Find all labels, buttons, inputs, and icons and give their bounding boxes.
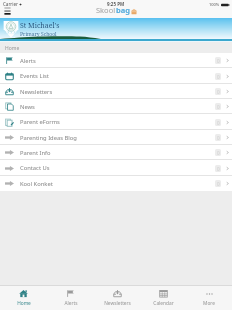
staticText: Events List [20, 72, 49, 80]
button[interactable]: Home [0, 286, 47, 310]
button[interactable]: Alerts [47, 286, 94, 310]
staticText: Contact Us [20, 164, 50, 172]
staticText: Newsletters [20, 88, 53, 96]
staticText: Primary School [20, 31, 57, 38]
staticText: 0 [217, 135, 220, 141]
staticText: Alerts [20, 57, 36, 65]
staticText: 9:25 PM [107, 1, 125, 7]
staticText: News [20, 103, 35, 111]
button[interactable]: News [0, 99, 232, 114]
staticText: Calendar [153, 300, 174, 307]
staticText: 0 [217, 150, 220, 156]
staticText: Home [17, 300, 31, 307]
staticText: Parent Info [20, 149, 51, 157]
staticText: Skool [96, 5, 116, 15]
staticText: 0 [217, 74, 220, 80]
button[interactable]: Newsletters [94, 286, 140, 310]
staticText: 0 [217, 104, 220, 110]
staticText: 0 [217, 166, 220, 172]
staticText: 0 [217, 181, 220, 187]
button[interactable]: Parenting Ideas Blog [0, 130, 232, 145]
staticText: Newsletters [104, 300, 131, 307]
staticText: Kool Konket [20, 180, 53, 188]
staticText: More [203, 300, 215, 307]
staticText: Home [5, 45, 20, 52]
staticText: 0 [217, 120, 220, 126]
button[interactable]: Events List [0, 68, 232, 84]
button[interactable]: Alerts [0, 53, 232, 68]
button[interactable]: Calendar [140, 286, 186, 310]
button[interactable]: Parent Info [0, 145, 232, 160]
staticText: Parent eForms [20, 118, 60, 126]
staticText: bag [116, 5, 130, 15]
staticText: 0 [217, 89, 220, 95]
staticText: Parenting Ideas Blog [20, 134, 77, 142]
staticText: Carrier [3, 1, 18, 7]
staticText: 0 [217, 58, 220, 64]
button[interactable]: Contact Us [0, 160, 232, 176]
button[interactable]: Menu [1, 6, 15, 16]
button[interactable]: More [186, 286, 232, 310]
button[interactable]: Parent eForms [0, 114, 232, 130]
button[interactable]: Newsletters [0, 84, 232, 99]
button[interactable]: Kool Konket [0, 176, 232, 191]
staticText: 100% [209, 2, 220, 7]
staticText: Alerts [64, 300, 78, 307]
staticText: St Michael's [20, 21, 60, 31]
